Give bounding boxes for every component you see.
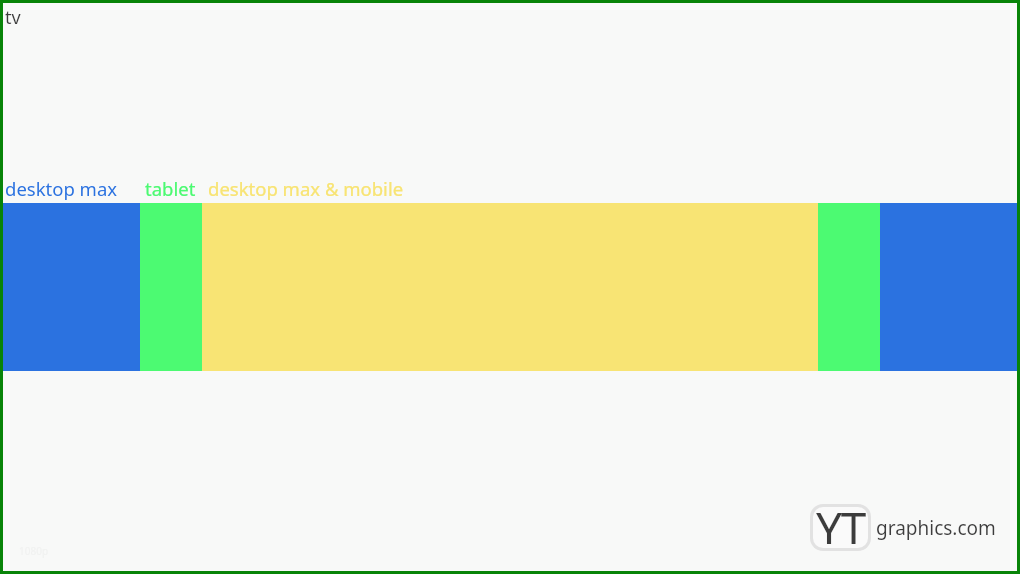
button[interactable]: desktop max bbox=[5, 176, 118, 201]
staticText: desktop max & mobile bbox=[208, 176, 404, 201]
staticText: YT bbox=[816, 497, 866, 544]
button[interactable]: tablet bbox=[145, 176, 196, 201]
staticText: desktop max bbox=[5, 176, 118, 201]
staticText: tablet bbox=[145, 176, 196, 201]
staticText: graphics.com bbox=[876, 515, 996, 541]
staticText: tv bbox=[5, 5, 21, 30]
button[interactable]: YT bbox=[810, 504, 996, 551]
button[interactable]: desktop max & mobile bbox=[208, 176, 404, 201]
button[interactable]: tv bbox=[5, 5, 21, 30]
